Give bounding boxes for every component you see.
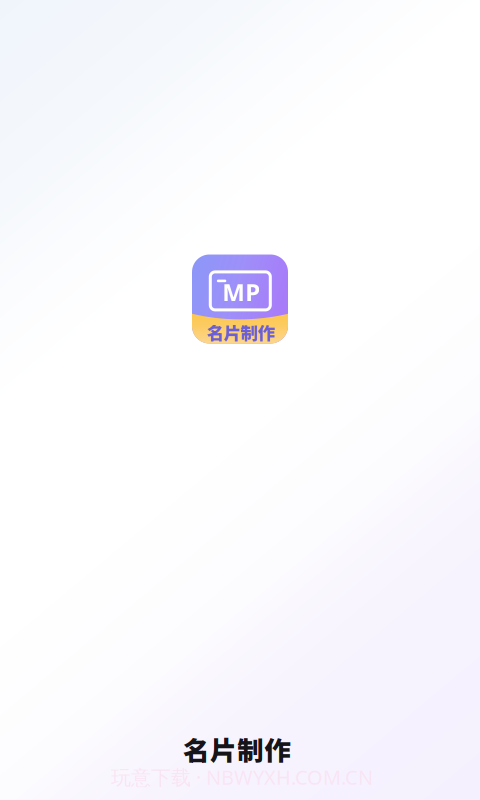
staticText: 名片制作: [183, 730, 291, 768]
staticText: 名片制作: [207, 319, 275, 345]
staticText: MP: [222, 276, 260, 308]
staticText: 玩意下载 · NBWYXH.COM.CN: [111, 764, 373, 790]
